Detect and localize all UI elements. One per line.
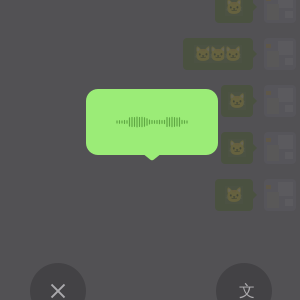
- staticText: 🐱: [228, 140, 246, 156]
- staticText: 🐱: [194, 46, 212, 62]
- button[interactable]: Convert to text: [216, 263, 272, 300]
- staticText: 🐱: [228, 93, 246, 109]
- staticText: 🐱: [224, 46, 242, 62]
- button[interactable]: Cancel recording: [30, 263, 86, 300]
- staticText: 文: [239, 281, 255, 300]
- staticText: 🐱: [209, 46, 227, 62]
- staticText: 🐱: [225, 187, 243, 203]
- staticText: 🐱: [225, 0, 243, 15]
